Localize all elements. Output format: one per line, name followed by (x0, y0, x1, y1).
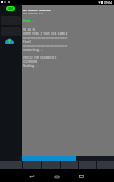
staticText: ON (8, 7, 13, 11)
staticText: VID/22 VCM DIAGNOSTIC (23, 56, 57, 60)
staticText: READ (8, 30, 15, 33)
staticText: ============================ (23, 44, 68, 48)
staticText: COMTR PURG I VHUI USR CAMBLE (23, 32, 68, 36)
button[interactable]: ON (6, 6, 15, 11)
staticText: ============================ (23, 36, 68, 40)
button[interactable]: Recents (75, 169, 88, 182)
staticText: Reading... (23, 64, 39, 68)
staticText: Final (23, 40, 31, 44)
button[interactable]: Home (50, 169, 63, 182)
staticText: Ready... (23, 19, 36, 22)
button[interactable]: Back (25, 169, 37, 182)
staticText: APK Version 2.0 (23, 12, 43, 15)
staticText: ICK/MCOM5 (23, 60, 38, 64)
staticText: 09:54 (104, 1, 113, 5)
staticText: MFF Android Interface (23, 9, 51, 12)
staticText: connecting... (23, 48, 44, 52)
staticText: FW 48 91 (23, 28, 36, 32)
button[interactable]: Cloud upload (5, 37, 14, 45)
